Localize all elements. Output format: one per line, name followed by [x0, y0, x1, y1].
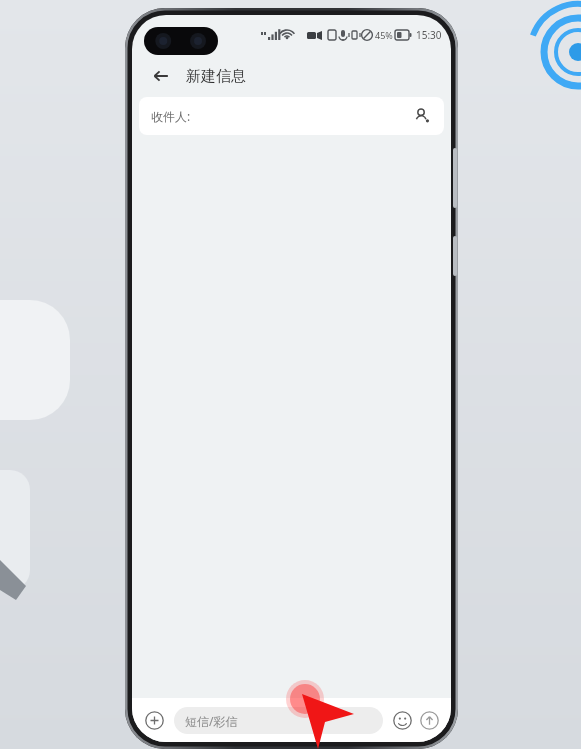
staticText: 新建信息 [186, 67, 246, 86]
staticText: 收件人: [151, 108, 191, 124]
staticText: 45% [375, 29, 393, 41]
staticText: 短信/彩信 [185, 713, 238, 729]
button[interactable]: Add attachment [140, 706, 168, 734]
button[interactable]: 收件人: [139, 97, 444, 135]
staticText: 15:30 [416, 28, 442, 42]
button[interactable]: 短信/彩信 [174, 707, 383, 734]
button[interactable]: Send [416, 707, 443, 734]
button[interactable]: Emoji [389, 707, 416, 734]
button[interactable]: Pick contact [410, 104, 434, 128]
button[interactable]: Back [144, 59, 178, 93]
